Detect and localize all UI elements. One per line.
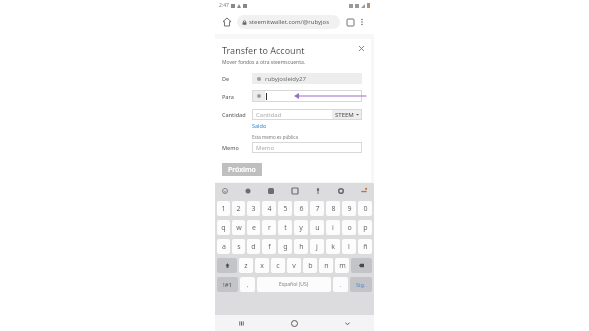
button[interactable]: t — [278, 220, 292, 235]
staticText: , — [247, 281, 249, 289]
button[interactable]: , — [240, 277, 255, 292]
staticText: u — [315, 223, 320, 233]
button[interactable]: Home — [268, 315, 321, 331]
button[interactable]: 1 — [217, 201, 230, 216]
staticText: Sig. — [356, 281, 366, 288]
button[interactable]: h — [294, 239, 308, 254]
staticText: 1 — [221, 204, 226, 214]
staticText: 3 — [251, 204, 256, 214]
button[interactable]: 7 — [310, 201, 324, 216]
button[interactable]: v — [287, 258, 301, 273]
button[interactable]: j — [310, 239, 324, 254]
staticText: Saldo — [252, 122, 267, 129]
staticText: 6 — [299, 204, 304, 214]
button[interactable]: f — [262, 239, 276, 254]
staticText: o — [347, 223, 352, 233]
button[interactable]: e — [247, 220, 260, 235]
staticText: l — [348, 242, 350, 252]
button[interactable]: rubyjosleidy27 — [252, 73, 362, 84]
staticText: !#1 — [223, 281, 232, 289]
button[interactable]: z — [239, 258, 253, 273]
button[interactable]: w — [232, 220, 245, 235]
staticText: b — [308, 261, 313, 271]
staticText: 2 — [236, 204, 241, 214]
button[interactable]: More — [358, 185, 370, 197]
button[interactable]: k — [326, 239, 340, 254]
button[interactable]: r — [262, 220, 276, 235]
button[interactable]: Tabs — [344, 16, 356, 28]
button[interactable]: 4 — [262, 201, 276, 216]
button[interactable]: d — [247, 239, 260, 254]
button[interactable]: n — [319, 258, 333, 273]
staticText: h — [299, 242, 304, 252]
button[interactable]: STEEM — [332, 109, 362, 120]
staticText: STEEM — [335, 111, 354, 119]
button[interactable]: Voice typing settings — [219, 185, 231, 197]
button[interactable]: Back — [321, 315, 374, 331]
button[interactable]: u — [310, 220, 324, 235]
button[interactable]: ñ — [358, 239, 372, 254]
staticText: p — [363, 223, 368, 233]
button[interactable]: c — [271, 258, 285, 273]
button[interactable]: Español (US) — [257, 277, 331, 292]
button[interactable]: b — [303, 258, 317, 273]
button[interactable]: 9 — [342, 201, 356, 216]
button[interactable]: 0 — [358, 201, 372, 216]
button[interactable]: Saldo — [252, 122, 267, 129]
button[interactable]: y — [294, 220, 308, 235]
staticText: . — [340, 281, 342, 289]
staticText: 8 — [331, 204, 336, 214]
staticText: z — [244, 261, 248, 271]
button[interactable]: Shift — [217, 258, 237, 273]
button[interactable]: x — [255, 258, 269, 273]
button[interactable]: Stickers — [265, 185, 277, 197]
button[interactable]: p — [358, 220, 372, 235]
button[interactable]: Memo — [252, 142, 362, 153]
button[interactable]: s — [232, 239, 245, 254]
staticText: rubyjosleidy27 — [265, 75, 306, 83]
button[interactable]: 8 — [326, 201, 340, 216]
button[interactable]: 6 — [294, 201, 308, 216]
staticText: s — [237, 242, 241, 252]
staticText: j — [316, 242, 318, 252]
staticText: Español (US) — [279, 281, 309, 288]
staticText: g — [283, 242, 288, 252]
staticText: y — [299, 223, 303, 233]
button[interactable]: q — [217, 220, 230, 235]
button[interactable]: steemitwallet.com/@rubyjos — [237, 15, 340, 29]
button[interactable]: Cantidad — [252, 111, 332, 119]
staticText: e — [252, 223, 256, 233]
staticText: Próximo — [228, 165, 256, 175]
button[interactable]: o — [342, 220, 356, 235]
button[interactable]: Close — [357, 44, 366, 53]
button[interactable]: Home — [221, 16, 233, 28]
button[interactable]: i — [326, 220, 340, 235]
button[interactable]: Keyboard settings — [335, 185, 347, 197]
staticText: q — [221, 223, 226, 233]
staticText: 9 — [347, 204, 352, 214]
staticText: Cantidad — [222, 111, 246, 118]
button[interactable] — [252, 90, 362, 102]
button[interactable]: l — [342, 239, 356, 254]
button[interactable]: Clipboard — [289, 185, 301, 197]
button[interactable]: a — [217, 239, 230, 254]
button[interactable]: More options — [356, 16, 368, 28]
button[interactable]: 2 — [232, 201, 245, 216]
button[interactable]: Sig. — [350, 277, 372, 292]
button[interactable]: Próximo — [222, 163, 262, 176]
button[interactable]: Backspace — [351, 258, 372, 273]
staticText: Memo — [256, 144, 275, 152]
button[interactable]: Recents — [215, 315, 268, 331]
button[interactable]: m — [335, 258, 349, 273]
staticText: Cantidad — [256, 111, 282, 119]
staticText: Mover fondos a otra steemscuenta. — [222, 59, 306, 66]
staticText: t — [284, 223, 287, 233]
button[interactable]: . — [333, 277, 348, 292]
button[interactable]: !#1 — [217, 277, 238, 292]
button[interactable]: Emoji — [242, 185, 254, 197]
button[interactable]: 5 — [278, 201, 292, 216]
button[interactable]: 3 — [247, 201, 260, 216]
button[interactable]: g — [278, 239, 292, 254]
staticText: Esta memo es pública — [252, 134, 299, 140]
button[interactable]: Voice input — [312, 185, 324, 197]
